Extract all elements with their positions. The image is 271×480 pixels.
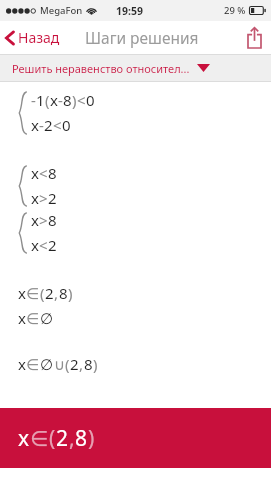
staticText: 2 [45, 283, 54, 303]
button[interactable]: Share [238, 25, 271, 51]
staticText: x [31, 210, 39, 230]
staticText: 8 [48, 210, 57, 230]
staticText: x [18, 283, 26, 303]
staticText: - [31, 90, 36, 110]
staticText: 8 [84, 354, 93, 374]
staticText: ) [93, 354, 98, 374]
staticText: , [69, 424, 75, 453]
staticText: ∈ [26, 285, 40, 302]
staticText: ) [88, 424, 95, 453]
staticText: 2 [70, 354, 79, 374]
staticText: ∅ [40, 356, 54, 373]
staticText: > [39, 210, 48, 230]
staticText: < [39, 235, 48, 255]
button[interactable]: Решить неравенство относител... [0, 55, 271, 81]
staticText: x [31, 188, 39, 208]
staticText: ) [68, 283, 73, 303]
staticText: ∈ [26, 310, 40, 327]
staticText: 8 [75, 424, 88, 453]
button[interactable]: x [0, 408, 271, 468]
staticText: x [50, 90, 58, 110]
staticText: Решить неравенство относител... [12, 61, 190, 76]
staticText: 8 [59, 283, 68, 303]
staticText: 0 [62, 115, 71, 135]
staticText: MegaFon [40, 4, 83, 17]
staticText: 2 [48, 235, 57, 255]
staticText: < [53, 115, 62, 135]
staticText: - [39, 115, 44, 135]
staticText: < [39, 163, 48, 183]
staticText: 2 [44, 115, 53, 135]
staticText: Назад [18, 28, 60, 47]
staticText: > [39, 188, 48, 208]
staticText: 2 [56, 424, 69, 453]
staticText: ( [65, 354, 70, 374]
staticText: x [18, 354, 26, 374]
staticText: ( [45, 90, 50, 110]
staticText: < [77, 90, 86, 110]
staticText: 29 % [224, 4, 246, 17]
staticText: 2 [48, 188, 57, 208]
staticText: 8 [63, 90, 72, 110]
staticText: 8 [48, 163, 57, 183]
staticText: , [54, 283, 59, 303]
staticText: x [31, 163, 39, 183]
staticText: ( [49, 424, 56, 453]
staticText: ( [40, 283, 45, 303]
staticText: x [31, 235, 39, 255]
staticText: ∈ [26, 356, 40, 373]
staticText: , [79, 354, 84, 374]
staticText: ) [72, 90, 77, 110]
staticText: Шаги решения [85, 27, 199, 48]
staticText: 19:59 [116, 4, 143, 18]
button[interactable]: Назад [0, 23, 66, 52]
staticText: x [18, 308, 26, 328]
staticText: x [31, 115, 39, 135]
staticText: x [18, 424, 30, 453]
staticText: 0 [86, 90, 95, 110]
staticText: - [58, 90, 63, 110]
staticText: ∈ [30, 427, 49, 451]
staticText: ∅ [40, 310, 54, 327]
staticText: ∪ [54, 356, 65, 373]
staticText: 1 [36, 90, 45, 110]
